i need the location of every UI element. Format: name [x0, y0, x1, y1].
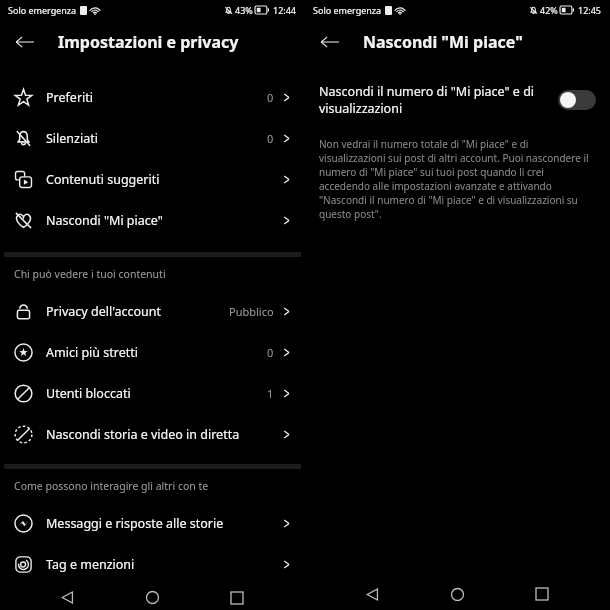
staticText: Preferiti: [46, 89, 267, 106]
button[interactable]: Back: [355, 578, 389, 610]
staticText: Nascondi "Mi piace": [363, 31, 523, 53]
staticText: Silenziati: [46, 130, 267, 147]
staticText: 12:45: [578, 4, 602, 16]
staticText: Privacy dell'account: [46, 303, 229, 320]
button[interactable]: Preferiti: [0, 77, 305, 118]
button[interactable]: Silenziati: [0, 118, 305, 159]
button[interactable]: Back: [50, 585, 84, 610]
staticText: 1: [267, 386, 274, 401]
button[interactable]: Nascondi il numero di "Mi piace" e di vi…: [305, 77, 610, 123]
button[interactable]: Amici più stretti: [0, 332, 305, 373]
staticText: Nascondi storia e video in diretta: [46, 426, 282, 443]
button[interactable]: Utenti bloccati: [0, 373, 305, 414]
staticText: 0: [267, 90, 274, 105]
staticText: 42%: [540, 4, 558, 16]
staticText: Pubblico: [229, 304, 274, 319]
button[interactable]: Nascondi storia e video in diretta: [0, 414, 305, 455]
staticText: Solo emergenza: [313, 4, 382, 16]
staticText: Solo emergenza: [8, 4, 77, 16]
staticText: Impostazioni e privacy: [58, 31, 239, 53]
staticText: Utenti bloccati: [46, 385, 267, 402]
staticText: 12:44: [273, 4, 297, 16]
button[interactable]: Privacy dell'account: [0, 291, 305, 332]
button[interactable]: Home: [440, 578, 474, 610]
staticText: Chi può vedere i tuoi contenuti: [14, 267, 166, 281]
staticText: Messaggi e risposte alle storie: [46, 515, 282, 532]
staticText: Tag e menzioni: [46, 556, 282, 573]
staticText: Nascondi "Mi piace": [46, 212, 282, 229]
staticText: Nascondi il numero di "Mi piace" e di vi…: [319, 83, 544, 117]
staticText: Come possono interagire gli altri con te: [14, 479, 209, 493]
button[interactable]: Messaggi e risposte alle storie: [0, 503, 305, 544]
staticText: Contenuti suggeriti: [46, 171, 282, 188]
button[interactable]: Back: [313, 25, 347, 59]
button[interactable]: Back: [8, 25, 42, 59]
button[interactable]: Recent apps: [220, 585, 254, 610]
staticText: Non vedrai il numero totale di "Mi piace…: [319, 137, 596, 221]
staticText: Amici più stretti: [46, 344, 267, 361]
staticText: 0: [267, 345, 274, 360]
staticText: 43%: [235, 4, 253, 16]
button[interactable]: Nascondi "Mi piace": [0, 200, 305, 241]
button[interactable]: Tag e menzioni: [0, 544, 305, 585]
button[interactable]: Contenuti suggeriti: [0, 159, 305, 200]
staticText: 0: [267, 131, 274, 146]
button[interactable]: Home: [135, 585, 169, 610]
button[interactable]: Recent apps: [525, 578, 559, 610]
